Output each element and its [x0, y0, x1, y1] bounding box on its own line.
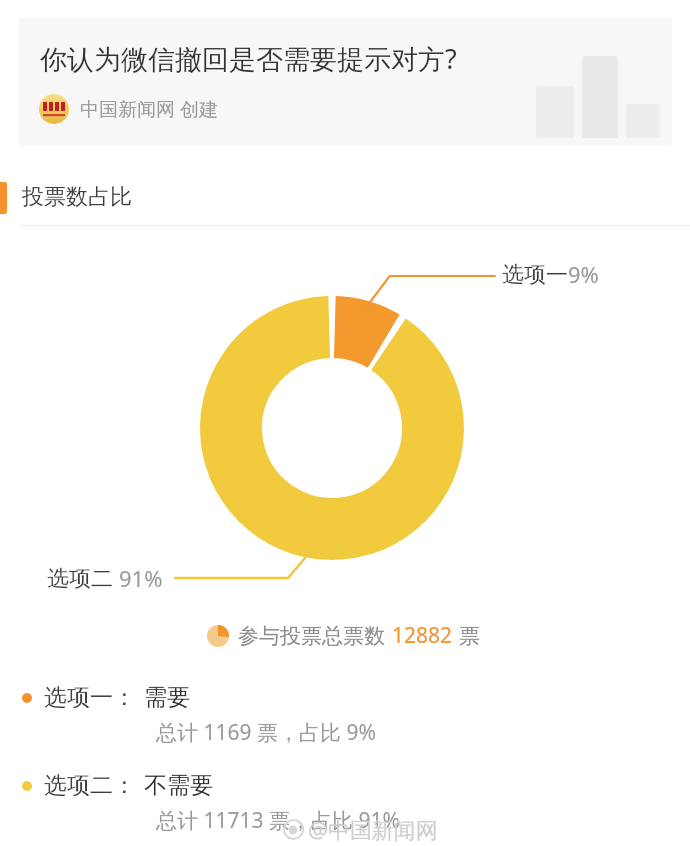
- staticText: 你认为微信撤回是否需要提示对方?: [40, 40, 457, 77]
- staticText: 投票数占比: [22, 183, 132, 211]
- button[interactable]: 选项二：: [0, 771, 690, 835]
- staticText: 选项二: [47, 565, 113, 593]
- staticText: 需要: [144, 683, 190, 712]
- staticText: 不需要: [144, 771, 213, 800]
- staticText: @中国新闻网: [308, 814, 438, 844]
- button[interactable]: 你认为微信撤回是否需要提示对方?: [18, 18, 672, 145]
- staticText: 参与投票总票数: [238, 623, 385, 649]
- button[interactable]: 选项一：: [0, 683, 690, 747]
- staticText: 91%: [119, 563, 163, 593]
- staticText: 12882: [392, 621, 453, 650]
- staticText: 总计 1169 票，占比 9%: [156, 718, 376, 747]
- button[interactable]: 参与投票总票数: [207, 621, 480, 650]
- staticText: 选项二：: [44, 771, 136, 800]
- staticText: 票: [459, 623, 480, 649]
- staticText: 选项一：: [44, 683, 136, 712]
- staticText: 9%: [568, 259, 599, 289]
- staticText: 选项一: [502, 261, 568, 289]
- staticText: 中国新闻网 创建: [80, 96, 218, 122]
- other: Weibo watermark: [283, 814, 438, 844]
- staticText: 总计 11713 票，占比 91%: [156, 806, 400, 835]
